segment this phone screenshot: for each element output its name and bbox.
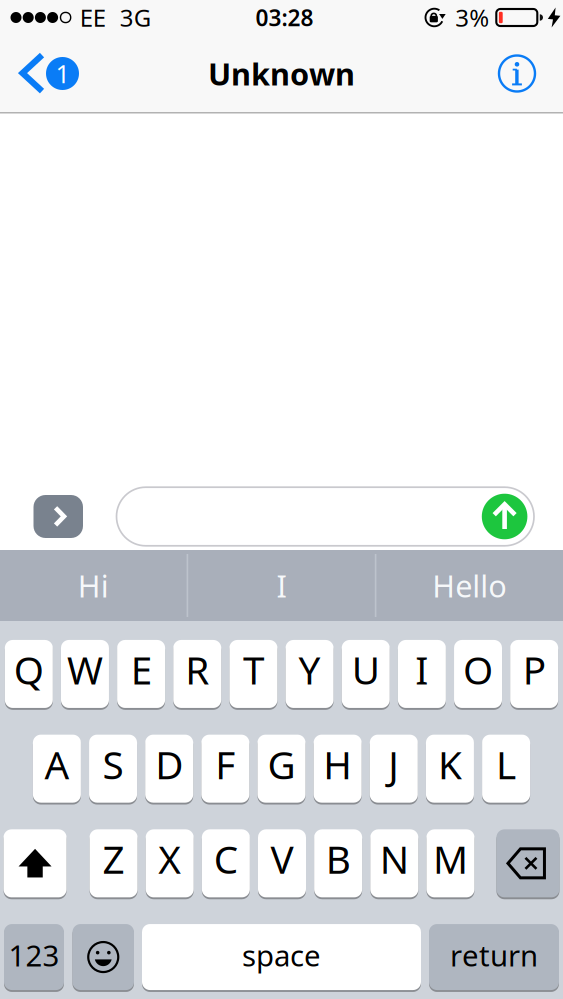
button[interactable] xyxy=(499,55,563,91)
staticText: 3G xyxy=(120,2,151,33)
staticText: F xyxy=(215,738,235,790)
staticText: V xyxy=(270,833,293,884)
staticText: S xyxy=(103,738,124,790)
button[interactable] xyxy=(496,828,559,898)
button[interactable]: return xyxy=(429,923,559,991)
button[interactable]: S xyxy=(89,734,137,804)
button[interactable]: M xyxy=(426,828,474,898)
button[interactable]: D xyxy=(145,734,193,804)
staticText: Hello xyxy=(432,565,507,606)
staticText: L xyxy=(496,738,516,790)
staticText: M xyxy=(433,833,468,884)
staticText: C xyxy=(214,833,238,884)
button[interactable]: L xyxy=(482,734,530,804)
staticText: G xyxy=(267,738,295,790)
button[interactable]: Hello xyxy=(376,550,563,621)
button[interactable]: W xyxy=(61,639,109,709)
button[interactable]: space xyxy=(142,923,421,991)
staticText: H xyxy=(323,738,352,790)
button[interactable] xyxy=(116,487,534,546)
staticText: Q xyxy=(14,644,44,695)
button[interactable]: X xyxy=(146,828,194,898)
staticText: Z xyxy=(103,833,125,884)
staticText: U xyxy=(352,644,380,695)
button[interactable]: Y xyxy=(286,639,334,709)
staticText: A xyxy=(44,738,69,790)
staticText: P xyxy=(523,644,546,695)
staticText: J xyxy=(388,738,399,790)
button[interactable] xyxy=(482,494,527,539)
staticText: 1 xyxy=(55,57,69,90)
button[interactable]: U xyxy=(342,639,390,709)
staticText: N xyxy=(380,833,409,884)
button[interactable] xyxy=(33,495,83,538)
staticText: EE xyxy=(80,2,106,33)
button[interactable]: E xyxy=(117,639,165,709)
button[interactable]: F xyxy=(201,734,249,804)
button[interactable] xyxy=(4,828,67,898)
button[interactable]: Hi xyxy=(0,550,187,621)
staticText: space xyxy=(242,936,321,975)
staticText: W xyxy=(67,644,103,695)
staticText: B xyxy=(326,833,351,884)
staticText: 123 xyxy=(8,936,59,975)
staticText: D xyxy=(155,738,183,790)
staticText: I xyxy=(415,644,428,695)
button[interactable]: 123 xyxy=(4,923,64,991)
button[interactable]: J xyxy=(370,734,418,804)
staticText: 03:28 xyxy=(255,2,313,32)
button[interactable]: K xyxy=(426,734,474,804)
button[interactable]: T xyxy=(229,639,277,709)
button[interactable]: N xyxy=(370,828,418,898)
button[interactable]: V xyxy=(258,828,306,898)
button[interactable]: I xyxy=(398,639,446,709)
button[interactable]: Z xyxy=(90,828,138,898)
button[interactable] xyxy=(72,923,134,991)
staticText: Hi xyxy=(78,565,109,606)
button[interactable]: 1 xyxy=(0,54,79,92)
button[interactable]: B xyxy=(314,828,362,898)
button[interactable]: R xyxy=(173,639,221,709)
button[interactable]: O xyxy=(454,639,502,709)
staticText: O xyxy=(463,644,493,695)
staticText: Y xyxy=(299,644,321,695)
button[interactable]: A xyxy=(33,734,81,804)
button[interactable]: C xyxy=(202,828,250,898)
button[interactable]: I xyxy=(188,550,375,621)
staticText: R xyxy=(185,644,209,695)
staticText: I xyxy=(276,565,286,606)
staticText: X xyxy=(158,833,181,884)
staticText: K xyxy=(438,738,462,790)
button[interactable]: P xyxy=(510,639,558,709)
button[interactable]: H xyxy=(314,734,362,804)
staticText: 3% xyxy=(455,2,489,33)
staticText: E xyxy=(131,644,152,695)
staticText: return xyxy=(450,936,538,975)
button[interactable]: Q xyxy=(5,639,53,709)
staticText: Unknown xyxy=(208,53,355,94)
button[interactable]: G xyxy=(257,734,305,804)
staticText: T xyxy=(243,644,264,695)
